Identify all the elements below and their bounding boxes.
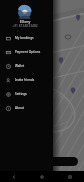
staticText: +91 8134033482 (0, 23, 50, 27)
staticText: My bookings (15, 36, 34, 40)
button[interactable]: Settings (0, 87, 53, 101)
button[interactable]: About (0, 101, 53, 115)
staticText: About (15, 106, 24, 110)
button[interactable]: My bookings (0, 31, 53, 45)
button[interactable]: Wallet (0, 59, 53, 73)
other: Back (12, 175, 16, 179)
other: Home (40, 175, 44, 179)
staticText: Settings (15, 92, 27, 96)
staticText: Invite friends (15, 78, 35, 82)
staticText: Wallet (15, 64, 25, 68)
button[interactable]: Payment Options (0, 45, 53, 59)
staticText: Ellery (0, 19, 50, 25)
button[interactable]: Where to? (30, 157, 78, 166)
staticText: Payment Options (15, 50, 41, 54)
other: Recent apps (68, 175, 72, 179)
button[interactable]: Invite friends (0, 73, 53, 87)
